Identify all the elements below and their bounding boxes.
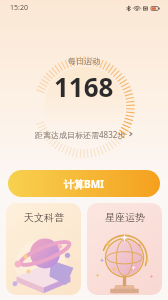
staticText: 每日运动 — [68, 56, 100, 66]
staticText: 15:20 — [10, 3, 28, 13]
staticText: 星座运势 — [105, 211, 145, 224]
staticText: 天文科普 — [24, 211, 64, 224]
button[interactable]: 天文科普 — [6, 203, 81, 295]
button[interactable]: 星座运势 — [87, 203, 162, 295]
button[interactable]: 计算BMI — [8, 170, 160, 197]
staticText: 1168 — [54, 69, 114, 104]
button[interactable]: 距离达成目标还需4832步 — [0, 126, 168, 142]
staticText: 计算BMI — [64, 177, 104, 191]
staticText: 距离达成目标还需4832步 — [35, 129, 126, 140]
